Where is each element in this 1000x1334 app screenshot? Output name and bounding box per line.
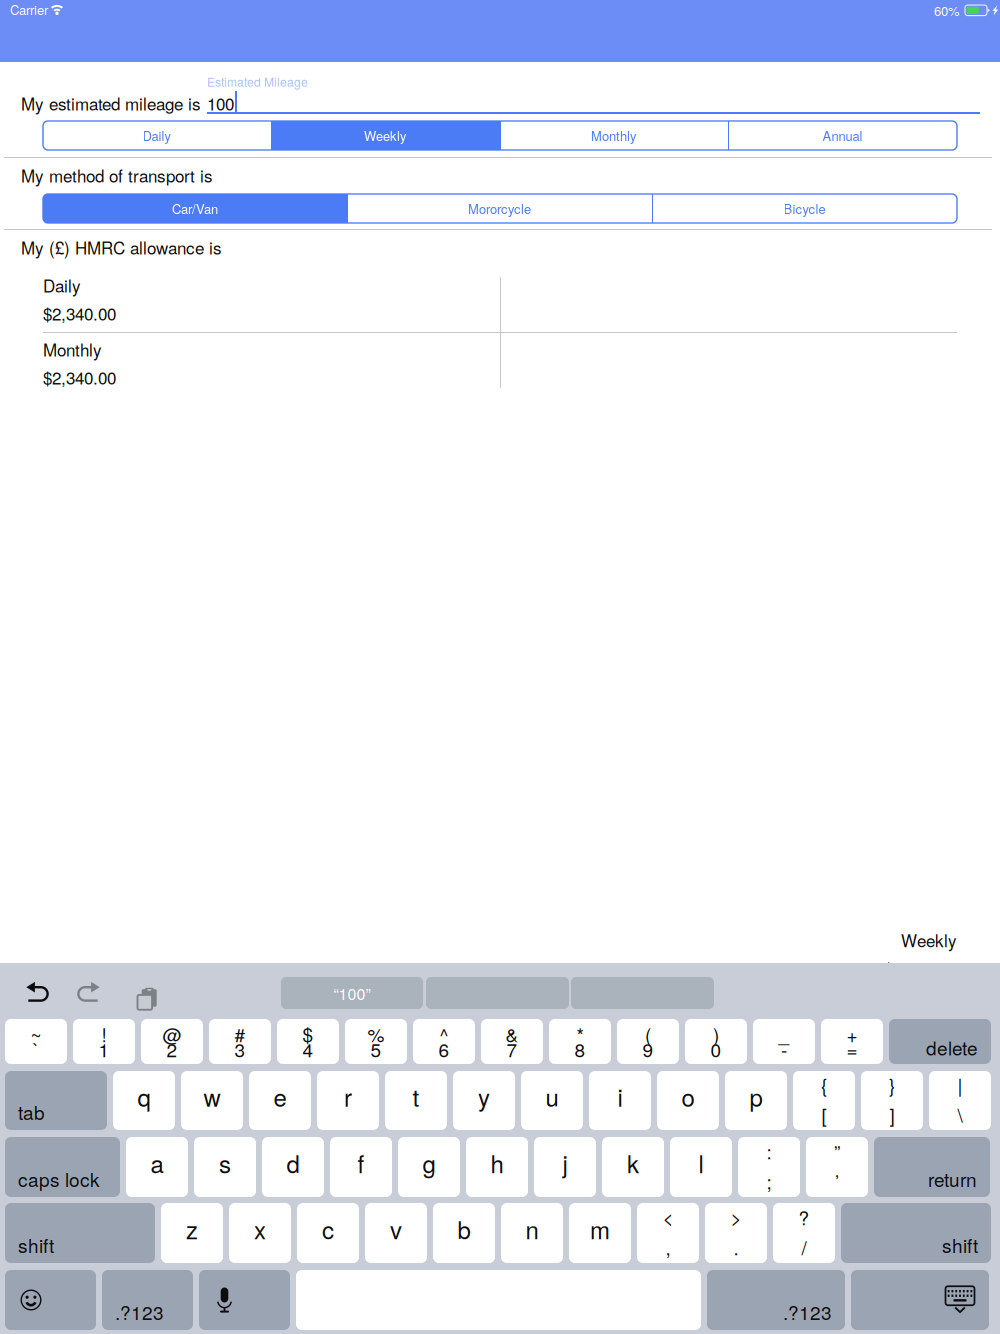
button[interactable]: m bbox=[569, 1203, 631, 1263]
staticText: x bbox=[254, 1212, 266, 1246]
button[interactable]: Dictation bbox=[199, 1270, 290, 1330]
button[interactable]: g bbox=[398, 1137, 460, 1197]
button[interactable]: + bbox=[821, 1019, 883, 1064]
staticText: - bbox=[781, 1035, 787, 1063]
button[interactable]: .?123 bbox=[102, 1270, 193, 1330]
button[interactable]: Mororcycle bbox=[347, 194, 652, 223]
button[interactable]: z bbox=[161, 1203, 223, 1263]
button[interactable]: ^ bbox=[413, 1019, 475, 1064]
staticText: l bbox=[698, 1146, 703, 1180]
button[interactable]: Bicycle bbox=[652, 194, 957, 223]
button[interactable]: k bbox=[602, 1137, 664, 1197]
button[interactable]: ) bbox=[685, 1019, 747, 1064]
staticText: Car/Van bbox=[172, 199, 218, 218]
button[interactable]: Car/Van bbox=[43, 194, 347, 223]
staticText: p bbox=[749, 1079, 762, 1114]
staticText: shift bbox=[942, 1231, 978, 1258]
button[interactable]: tab bbox=[5, 1071, 107, 1130]
button[interactable]: p bbox=[725, 1071, 787, 1130]
button[interactable]: l bbox=[670, 1137, 732, 1197]
button[interactable]: % bbox=[345, 1019, 407, 1064]
button[interactable]: b bbox=[433, 1203, 495, 1263]
button[interactable]: # bbox=[209, 1019, 271, 1064]
button[interactable]: q bbox=[113, 1071, 175, 1130]
staticText: 7 bbox=[506, 1035, 517, 1063]
button[interactable]: c bbox=[297, 1203, 359, 1263]
button[interactable]: i bbox=[589, 1071, 651, 1130]
staticText: 60% bbox=[934, 1, 960, 20]
button[interactable]: Hide keyboard bbox=[851, 1270, 989, 1330]
button[interactable]: w bbox=[181, 1071, 243, 1130]
staticText: % bbox=[367, 1020, 384, 1048]
staticText: .?123 bbox=[783, 1298, 832, 1325]
button[interactable]: Weekly bbox=[271, 121, 500, 150]
button[interactable]: Emoji bbox=[5, 1270, 96, 1330]
button[interactable]: > bbox=[705, 1203, 767, 1263]
button[interactable]: Redo bbox=[78, 982, 100, 1004]
staticText: My (£) HMRC allowance is bbox=[21, 235, 222, 259]
button[interactable]: shift bbox=[5, 1203, 155, 1263]
staticText: w bbox=[203, 1079, 220, 1114]
button[interactable]: s bbox=[194, 1137, 256, 1197]
button[interactable]: h bbox=[466, 1137, 528, 1197]
staticText: tab bbox=[18, 1098, 45, 1125]
staticText: i bbox=[617, 1079, 622, 1114]
button[interactable]: & bbox=[481, 1019, 543, 1064]
button[interactable]: y bbox=[453, 1071, 515, 1130]
button[interactable]: n bbox=[501, 1203, 563, 1263]
button[interactable]: : bbox=[738, 1137, 800, 1197]
staticText: # bbox=[234, 1020, 245, 1048]
staticText: Estimated Mileage bbox=[207, 73, 308, 90]
button[interactable]: { bbox=[793, 1071, 855, 1130]
button[interactable]: ( bbox=[617, 1019, 679, 1064]
button[interactable]: ? bbox=[773, 1203, 835, 1263]
button[interactable]: ~ bbox=[5, 1019, 67, 1064]
staticText: q bbox=[137, 1079, 150, 1114]
staticText: \ bbox=[957, 1101, 962, 1128]
button[interactable]: d bbox=[262, 1137, 324, 1197]
button[interactable]: ! bbox=[73, 1019, 135, 1064]
button[interactable]: u bbox=[521, 1071, 583, 1130]
button[interactable]: e bbox=[249, 1071, 311, 1130]
staticText: $2,340.00 bbox=[884, 1020, 957, 1044]
button[interactable]: @ bbox=[141, 1019, 203, 1064]
staticText: s bbox=[219, 1146, 231, 1180]
button[interactable]: $ bbox=[277, 1019, 339, 1064]
staticText: y bbox=[478, 1079, 490, 1114]
button[interactable]: Paste bbox=[135, 985, 155, 1008]
button[interactable]: f bbox=[330, 1137, 392, 1197]
button[interactable]: Monthly bbox=[500, 121, 728, 150]
button[interactable]: _ bbox=[753, 1019, 815, 1064]
button[interactable]: return bbox=[874, 1137, 990, 1197]
button[interactable]: < bbox=[637, 1203, 699, 1263]
button[interactable]: Annual bbox=[728, 121, 957, 150]
button[interactable]: x bbox=[229, 1203, 291, 1263]
button[interactable]: r bbox=[317, 1071, 379, 1130]
staticText: , bbox=[665, 1233, 670, 1261]
button[interactable]: caps lock bbox=[5, 1137, 120, 1197]
button[interactable]: } bbox=[861, 1071, 923, 1130]
button[interactable]: j bbox=[534, 1137, 596, 1197]
staticText: j bbox=[562, 1146, 567, 1180]
staticText: _ bbox=[778, 1020, 789, 1048]
button[interactable]: “100” bbox=[281, 977, 423, 1009]
button[interactable]: * bbox=[549, 1019, 611, 1064]
button[interactable]: t bbox=[385, 1071, 447, 1130]
button[interactable]: o bbox=[657, 1071, 719, 1130]
button[interactable]: Undo bbox=[26, 982, 48, 1004]
button[interactable]: .?123 bbox=[707, 1270, 845, 1330]
staticText: h bbox=[490, 1146, 503, 1180]
button[interactable]: shift bbox=[841, 1203, 991, 1263]
button[interactable]: v bbox=[365, 1203, 427, 1263]
button[interactable]: a bbox=[126, 1137, 188, 1197]
staticText: ] bbox=[889, 1101, 894, 1128]
staticText: m bbox=[590, 1212, 610, 1246]
button[interactable]: delete bbox=[889, 1019, 991, 1064]
button[interactable]: Daily bbox=[43, 121, 271, 150]
button[interactable]: ” bbox=[806, 1137, 868, 1197]
staticText: @ bbox=[162, 1020, 181, 1048]
button[interactable]: | bbox=[929, 1071, 991, 1130]
